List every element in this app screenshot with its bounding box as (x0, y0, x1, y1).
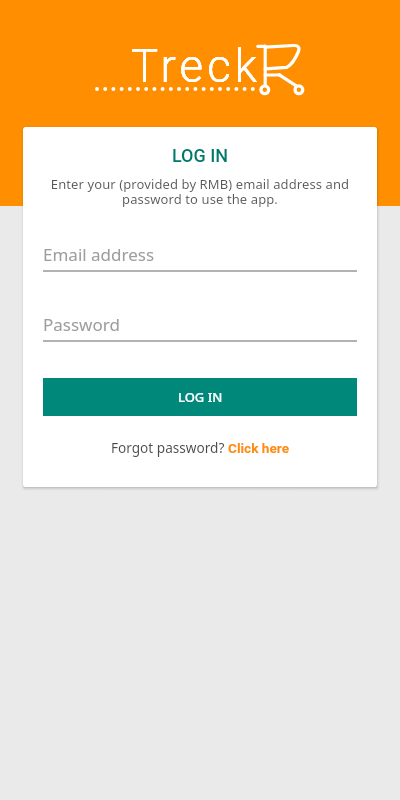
staticText: Enter your (provided by RMB) email addre… (40, 175, 360, 208)
button[interactable]: Password (43, 313, 357, 342)
staticText: Email address (43, 243, 155, 266)
staticText: LOG IN (178, 388, 223, 406)
staticText: Treck (131, 40, 262, 93)
staticText: Forgot password? (111, 438, 228, 457)
button[interactable]: Email address (43, 243, 357, 272)
staticText: Click here (228, 440, 289, 456)
staticText: Password (43, 313, 120, 336)
staticText: LOG IN (23, 145, 377, 166)
staticText: Treck (131, 40, 262, 93)
other: TreckR logo (0, 0, 400, 800)
button[interactable]: Click here (228, 440, 289, 456)
button[interactable]: LOG IN (43, 378, 357, 416)
